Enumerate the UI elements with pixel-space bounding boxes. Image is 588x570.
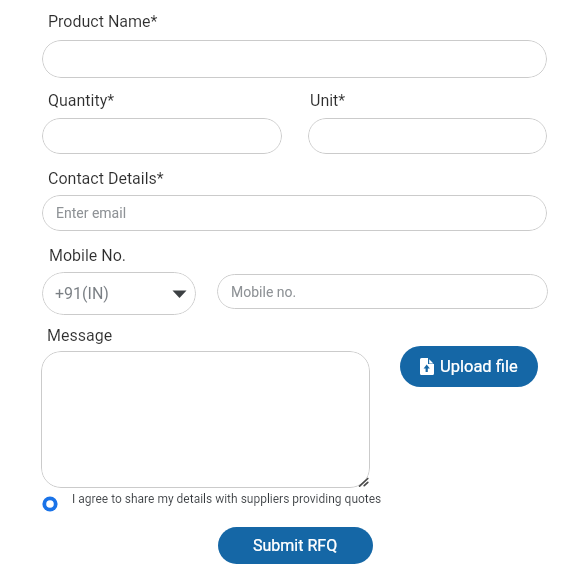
button[interactable]: [42, 118, 282, 154]
staticText: Product Name*: [48, 12, 158, 31]
staticText: Quantity*: [48, 91, 115, 110]
button[interactable]: Mobile no.: [217, 274, 548, 309]
staticText: Mobile No.: [49, 246, 127, 265]
button[interactable]: Enter email: [42, 195, 547, 231]
staticText: Unit*: [310, 91, 346, 110]
staticText: Upload file: [440, 357, 518, 376]
staticText: Mobile no.: [231, 284, 297, 300]
button[interactable]: [308, 118, 547, 154]
button[interactable]: [41, 351, 370, 488]
button[interactable]: [42, 40, 547, 78]
staticText: Contact Details*: [48, 169, 164, 188]
button[interactable]: Upload file: [400, 346, 538, 387]
staticText: I agree to share my details with supplie…: [72, 492, 382, 506]
staticText: Submit RFQ: [253, 536, 338, 555]
staticText: +91(IN): [55, 284, 109, 303]
button[interactable]: [42, 496, 58, 512]
staticText: Enter email: [56, 205, 127, 221]
button[interactable]: +91(IN): [42, 272, 196, 315]
button[interactable]: Submit RFQ: [218, 527, 373, 564]
staticText: Message: [47, 326, 113, 345]
